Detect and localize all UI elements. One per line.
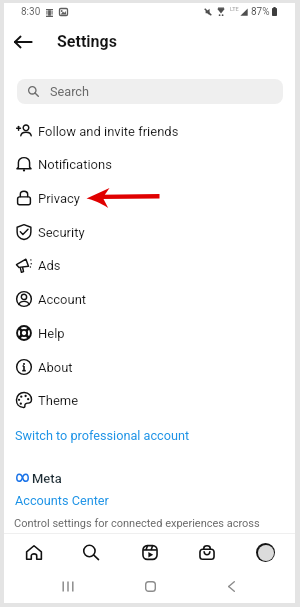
staticText: Security <box>38 225 85 240</box>
button[interactable]: Home <box>138 574 162 598</box>
staticText: Follow and invite friends <box>38 124 179 139</box>
button[interactable]: Recent apps <box>56 574 80 598</box>
staticText: Switch to professional account <box>15 428 190 443</box>
button[interactable]: Help <box>4 316 295 350</box>
button[interactable]: Security <box>4 215 295 249</box>
button[interactable]: Back <box>219 574 243 598</box>
button[interactable]: Reels <box>136 538 164 566</box>
button[interactable]: Privacy <box>4 181 295 215</box>
staticText: About <box>38 360 73 375</box>
staticText: Search <box>50 84 89 99</box>
button[interactable]: Back <box>11 30 35 54</box>
staticText: 87% <box>251 6 270 18</box>
button[interactable]: Shop <box>193 538 221 566</box>
button[interactable]: Search <box>77 538 105 566</box>
staticText: Control settings for connected experienc… <box>14 517 260 530</box>
staticText: 8:30 <box>21 6 41 18</box>
staticText: Settings <box>57 32 117 51</box>
button[interactable]: Home <box>20 538 48 566</box>
button[interactable]: Profile <box>251 538 279 566</box>
staticText: Theme <box>38 393 79 408</box>
button[interactable]: Account <box>4 282 295 316</box>
button[interactable]: Follow and invite friends <box>4 114 295 148</box>
button[interactable]: About <box>4 350 295 384</box>
staticText: Meta <box>32 471 62 486</box>
staticText: Account <box>38 292 87 307</box>
staticText: Ads <box>38 258 61 273</box>
button[interactable]: Ads <box>4 248 295 282</box>
staticText: Help <box>38 326 65 341</box>
staticText: LTE <box>230 6 239 12</box>
button[interactable]: Notifications <box>4 147 295 181</box>
staticText: Accounts Center <box>15 493 109 508</box>
button[interactable]: Switch to professional account <box>4 424 295 446</box>
button[interactable]: Search <box>17 79 283 104</box>
staticText: Privacy <box>38 191 80 206</box>
button[interactable]: Theme <box>4 383 295 417</box>
staticText: Notifications <box>38 157 112 172</box>
button[interactable]: Accounts Center <box>4 491 295 510</box>
